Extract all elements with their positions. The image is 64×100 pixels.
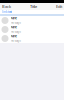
staticText: link text (2, 10, 12, 14)
staticText: Name (10, 25, 17, 29)
staticText: message (10, 30, 21, 33)
staticText: message (10, 21, 21, 24)
staticText: Edit (56, 4, 62, 9)
staticText: message (10, 39, 21, 42)
staticText: Title (30, 4, 37, 9)
staticText: Name (10, 16, 17, 20)
staticText: Name (10, 34, 17, 38)
staticText: Back (2, 4, 11, 9)
